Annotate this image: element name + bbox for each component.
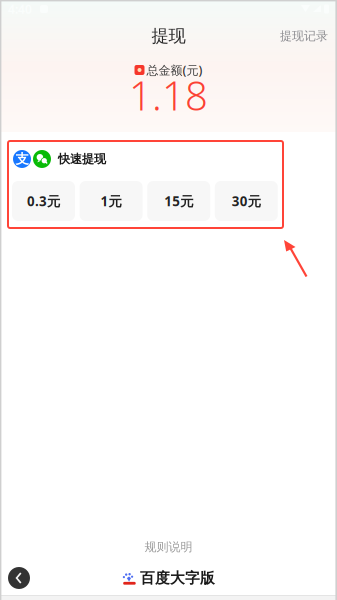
staticText: 快速提现	[58, 152, 106, 166]
button[interactable]: 15元	[147, 181, 210, 221]
staticText: 提现记录	[280, 29, 328, 43]
staticText: 30元	[232, 192, 261, 210]
staticText: 1.18	[129, 68, 208, 121]
button[interactable]: 0.3元	[12, 181, 75, 221]
staticText: 1元	[101, 192, 122, 210]
button[interactable]: 规则说明	[136, 541, 200, 553]
staticText: 支	[15, 151, 28, 167]
staticText: 百度大字版	[140, 569, 215, 587]
staticText: 15元	[164, 192, 193, 210]
staticText: 0.3元	[27, 192, 60, 210]
button[interactable]: 30元	[215, 181, 278, 221]
button[interactable]: 提现记录	[280, 22, 337, 50]
staticText: 提现	[151, 25, 185, 47]
button[interactable]: 1元	[80, 181, 143, 221]
staticText: 规则说明	[144, 540, 192, 554]
staticText: 总金额(元)	[146, 62, 202, 78]
staticText: 4:40	[8, 1, 32, 17]
button[interactable]: Back	[8, 567, 30, 589]
